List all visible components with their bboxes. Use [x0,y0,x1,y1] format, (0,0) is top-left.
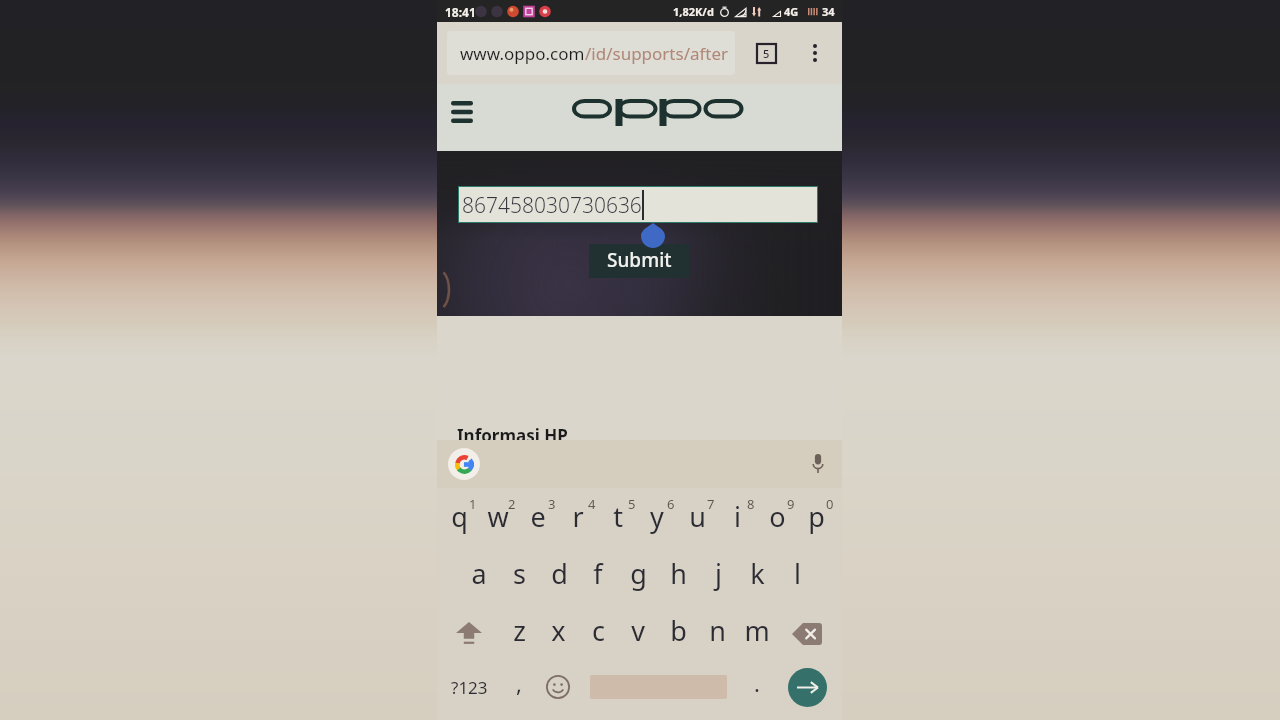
button[interactable]: Menu [442,92,482,132]
staticText: 0 [826,495,834,513]
staticText: l [794,555,801,592]
staticText: z [513,612,526,649]
button[interactable]: 2 [478,491,518,548]
staticText: p [808,498,825,535]
staticText: Informasi HP [457,424,568,447]
button[interactable]: . [737,657,777,717]
button[interactable]: 5 [598,491,638,548]
staticText: 1 [469,495,477,513]
staticText: 9 [787,495,795,513]
staticText: , [516,668,522,698]
button[interactable]: Tabs [757,44,776,63]
button[interactable]: Voice input [807,453,829,475]
button[interactable]: 6 [637,491,677,548]
staticText: t [613,498,623,535]
button[interactable]: b [658,605,698,662]
button[interactable]: m [737,605,777,662]
staticText: 34 [822,4,835,19]
staticText: 6 [667,495,675,513]
button[interactable]: Emoji [537,657,579,717]
staticText: 7 [707,495,715,513]
staticText: u [689,498,706,535]
staticText: g [630,555,647,592]
staticText: q [451,498,468,535]
staticText: v [631,612,645,649]
staticText: 4 [588,495,596,513]
button[interactable]: 1 [439,491,479,548]
staticText: 5 [763,46,770,61]
button[interactable]: 867458030730636 [459,187,817,222]
button[interactable]: a [459,548,499,605]
staticText: h [670,555,687,592]
button[interactable]: x [538,605,578,662]
button[interactable]: , [499,657,539,717]
button[interactable]: 8 [717,491,757,548]
button[interactable]: 3 [518,491,558,548]
button[interactable]: s [499,548,539,605]
button[interactable]: Submit [589,244,689,278]
button[interactable]: v [618,605,658,662]
staticText: f [593,555,603,592]
button[interactable]: Shift [440,605,498,662]
button[interactable]: l [777,548,817,605]
button[interactable]: 9 [757,491,797,548]
button[interactable]: j [698,548,738,605]
staticText: www.oppo.com [460,42,585,65]
button[interactable]: n [697,605,737,662]
button[interactable]: More options [803,41,827,65]
button[interactable]: z [499,605,539,662]
button[interactable]: h [658,548,698,605]
staticText: b [670,612,687,649]
button[interactable]: f [578,548,618,605]
button[interactable]: g [618,548,658,605]
button[interactable]: ?123 [440,657,498,717]
button[interactable]: www.oppo.com [447,31,735,75]
staticText: e [530,498,546,535]
staticText: y [650,498,664,535]
staticText: i [734,498,741,535]
staticText: . [754,668,760,698]
staticText: ?123 [451,676,488,699]
button[interactable]: 4 [558,491,598,548]
staticText: d [551,555,568,592]
staticText: n [709,612,726,649]
staticText: m [744,612,770,649]
staticText: a [471,555,487,592]
button[interactable]: Space [583,657,733,717]
staticText: 8 [747,495,755,513]
button[interactable]: 0 [796,491,836,548]
staticText: w [487,498,509,535]
button[interactable]: c [578,605,618,662]
staticText: o [769,498,786,535]
staticText: c [592,612,605,649]
staticText: 1,82K/d [673,4,714,19]
button[interactable]: Backspace [777,605,837,662]
staticText: /id/supports/after [585,42,729,65]
staticText: 2 [508,495,516,513]
staticText: x [551,612,566,649]
button[interactable]: Google [448,448,480,480]
button[interactable]: Enter [776,657,838,717]
staticText: 18:41 [445,4,476,20]
button[interactable]: 7 [677,491,717,548]
staticText: 5 [628,495,636,513]
staticText: s [513,555,526,592]
staticText: 3 [548,495,556,513]
staticText: 4G [784,4,799,19]
staticText: Submit [607,247,672,273]
button[interactable]: k [737,548,777,605]
button[interactable]: d [539,548,579,605]
staticText: k [750,555,765,592]
staticText: r [572,498,584,535]
staticText: 867458030730636 [462,191,642,220]
staticText: j [715,555,722,592]
